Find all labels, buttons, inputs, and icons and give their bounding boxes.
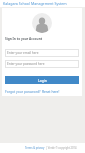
staticText: | Verde © copyright 2014 (45, 146, 77, 150)
staticText: Sign In to your Account (5, 37, 43, 41)
staticText: Reset here! (42, 89, 60, 93)
staticText: Kalagara School Management System (3, 1, 67, 6)
button[interactable]: Enter your email here (5, 49, 79, 57)
staticText: Forgot your password? (5, 89, 42, 93)
button[interactable]: Login (5, 76, 79, 84)
staticText: Enter your password here (7, 62, 45, 66)
button[interactable]: Enter your password here (5, 60, 79, 68)
staticText: Enter your email here (7, 51, 39, 55)
staticText: Login (38, 78, 47, 83)
button[interactable]: Terms & privacy (25, 146, 45, 150)
button[interactable]: Forgot your password? (5, 89, 60, 93)
